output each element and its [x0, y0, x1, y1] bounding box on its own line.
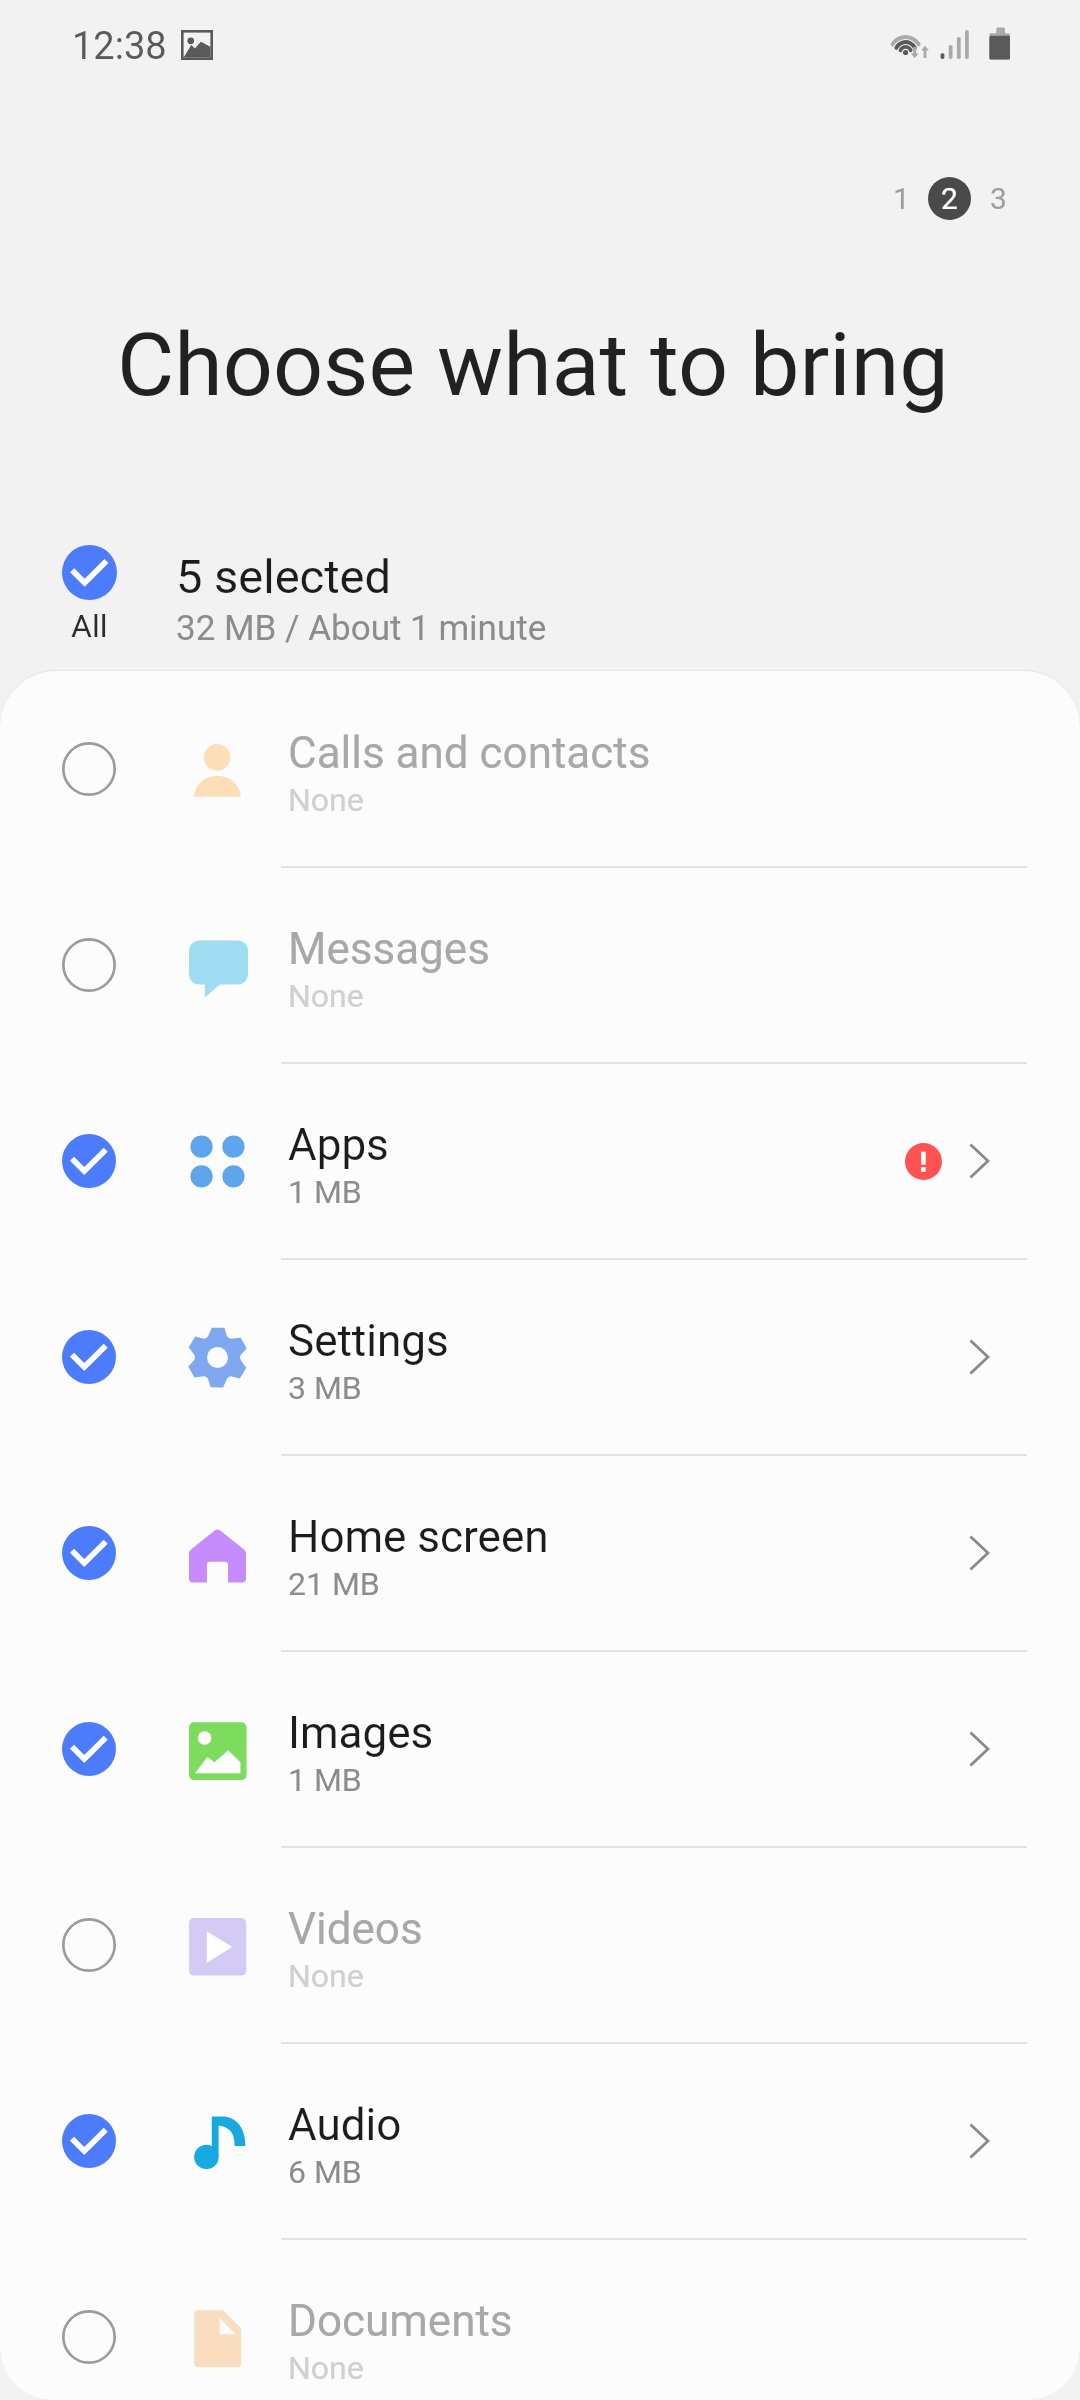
staticText: Calls and contacts: [288, 727, 651, 779]
staticText: Apps: [288, 1119, 389, 1171]
staticText: None: [288, 1957, 364, 1995]
other: Open details: [969, 1143, 991, 1179]
staticText: Messages: [288, 923, 490, 975]
staticText: Documents: [288, 2295, 513, 2347]
staticText: 1 MB: [288, 1761, 362, 1799]
staticText: 3: [990, 181, 1007, 216]
staticText: None: [288, 781, 364, 819]
button[interactable]: Images: [0, 1651, 1080, 1847]
button[interactable]: 3: [983, 177, 1013, 220]
staticText: Videos: [288, 1903, 423, 1955]
button[interactable]: All: [52, 530, 126, 645]
staticText: Images: [288, 1707, 434, 1759]
staticText: None: [288, 2349, 364, 2387]
staticText: 12:38: [72, 24, 167, 69]
button[interactable]: Audio: [0, 2043, 1080, 2239]
staticText: Home screen: [288, 1511, 549, 1563]
staticText: 5 selected: [176, 549, 392, 604]
button[interactable]: Messages: [0, 867, 1080, 1063]
staticText: 2: [941, 181, 958, 216]
staticText: Audio: [288, 2099, 402, 2151]
other: Open details: [969, 2123, 991, 2159]
other: Warning: [905, 1143, 942, 1180]
button[interactable]: 2: [928, 177, 971, 220]
other: Status icons: [880, 22, 1015, 68]
staticText: None: [288, 977, 364, 1015]
button[interactable]: Calls and contacts: [0, 671, 1080, 867]
other: Open details: [969, 1731, 991, 1767]
staticText: 32 MB / About 1 minute: [176, 608, 547, 649]
staticText: All: [71, 607, 108, 645]
button[interactable]: Documents: [0, 2239, 1080, 2400]
staticText: 3 MB: [288, 1369, 362, 1407]
staticText: 6 MB: [288, 2153, 362, 2191]
staticText: 21 MB: [288, 1565, 380, 1603]
other: Open details: [969, 1535, 991, 1571]
button[interactable]: Videos: [0, 1847, 1080, 2043]
button[interactable]: Home screen: [0, 1455, 1080, 1651]
button[interactable]: 1: [886, 177, 916, 220]
staticText: Choose what to bring: [117, 313, 949, 416]
button[interactable]: Apps: [0, 1063, 1080, 1259]
staticText: Settings: [288, 1315, 449, 1367]
button[interactable]: Settings: [0, 1259, 1080, 1455]
staticText: 1: [893, 181, 910, 216]
other: Open details: [969, 1339, 991, 1375]
staticText: 1 MB: [288, 1173, 362, 1211]
